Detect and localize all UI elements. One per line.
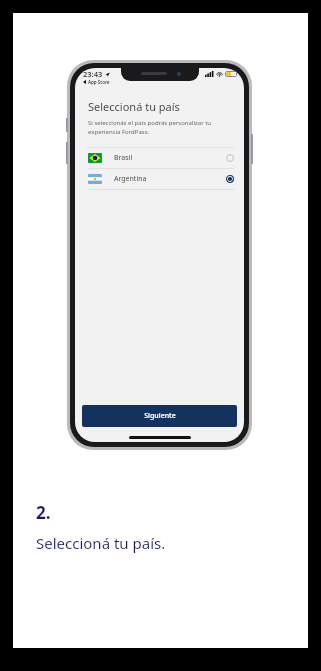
button[interactable]: Argentina bbox=[75, 168, 244, 189]
staticText: Seleccioná tu país. bbox=[36, 533, 166, 553]
button[interactable]: Brasil bbox=[75, 147, 244, 168]
button[interactable]: Siguiente bbox=[82, 405, 237, 427]
staticText: Siguiente bbox=[144, 411, 176, 421]
staticText: App Store bbox=[88, 79, 110, 85]
staticText: Argentina bbox=[114, 174, 147, 184]
staticText: Si seleccionás el país podrás personaliz… bbox=[88, 119, 212, 136]
staticText: 23:43 bbox=[83, 69, 103, 79]
staticText: Seleccioná tu país bbox=[88, 99, 180, 114]
staticText: 2. bbox=[36, 501, 51, 524]
staticText: Brasil bbox=[114, 153, 133, 163]
